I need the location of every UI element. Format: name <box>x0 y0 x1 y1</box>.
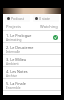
button[interactable]: 4. Les Notes <box>3 67 61 79</box>
button[interactable]: 2. Le Deuxieme <box>3 43 61 55</box>
staticText: 5. La Finale <box>6 81 26 86</box>
button[interactable]: 0 state <box>35 15 57 22</box>
staticText: Podcast <box>11 16 24 21</box>
staticText: Ensemble <box>6 86 21 90</box>
staticText: 1. Le Prologue <box>6 33 32 38</box>
staticText: 4. Les Notes <box>6 69 28 74</box>
button[interactable]: Podcast <box>7 15 28 22</box>
staticText: Archive <box>6 74 18 78</box>
button[interactable]: 5. La Finale <box>3 79 61 91</box>
button[interactable]: 1. Le Prologue <box>3 31 61 43</box>
staticText: Animating <box>6 38 22 42</box>
staticText: 2. Le Deuxieme <box>6 45 34 50</box>
staticText: Watching <box>40 24 58 29</box>
staticText: Intervalle <box>6 50 21 54</box>
button[interactable] <box>3 8 61 14</box>
staticText: Projects <box>6 24 21 29</box>
staticText: 0 state <box>39 16 51 21</box>
staticText: Ambient <box>6 62 19 66</box>
staticText: 3. Le Milieu <box>6 57 27 62</box>
button[interactable]: 3. Le Milieu <box>3 55 61 67</box>
